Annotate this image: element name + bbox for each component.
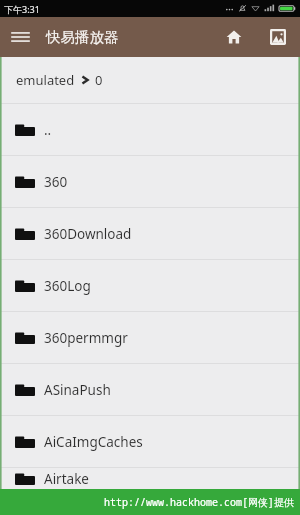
- button[interactable]: Gallery: [256, 17, 300, 57]
- staticText: ..: [44, 121, 52, 139]
- button[interactable]: Open navigation menu: [0, 17, 40, 57]
- button[interactable]: ASinaPush: [0, 364, 300, 415]
- button[interactable]: Home: [212, 17, 256, 57]
- button[interactable]: 360permmgr: [0, 312, 300, 363]
- staticText: ASinaPush: [44, 381, 111, 399]
- staticText: 下午3:31: [4, 3, 40, 15]
- staticText: 360Download: [44, 225, 132, 243]
- staticText: AiCaImgCaches: [44, 433, 143, 451]
- button[interactable]: 360Log: [0, 260, 300, 311]
- staticText: 快易播放器: [46, 28, 119, 46]
- button[interactable]: ..: [0, 104, 300, 155]
- button[interactable]: 360Download: [0, 208, 300, 259]
- staticText: 360: [44, 173, 68, 191]
- staticText: 360Log: [44, 277, 91, 295]
- staticText: http://www.hackhome.com[网侠]提供: [104, 495, 294, 509]
- staticText: 0: [95, 71, 103, 89]
- button[interactable]: Airtake: [0, 468, 300, 489]
- button[interactable]: 360: [0, 156, 300, 207]
- button[interactable]: AiCaImgCaches: [0, 416, 300, 467]
- button[interactable]: emulated: [0, 57, 300, 103]
- staticText: 360permmgr: [44, 329, 128, 347]
- staticText: Airtake: [44, 470, 89, 488]
- staticText: emulated: [16, 71, 75, 89]
